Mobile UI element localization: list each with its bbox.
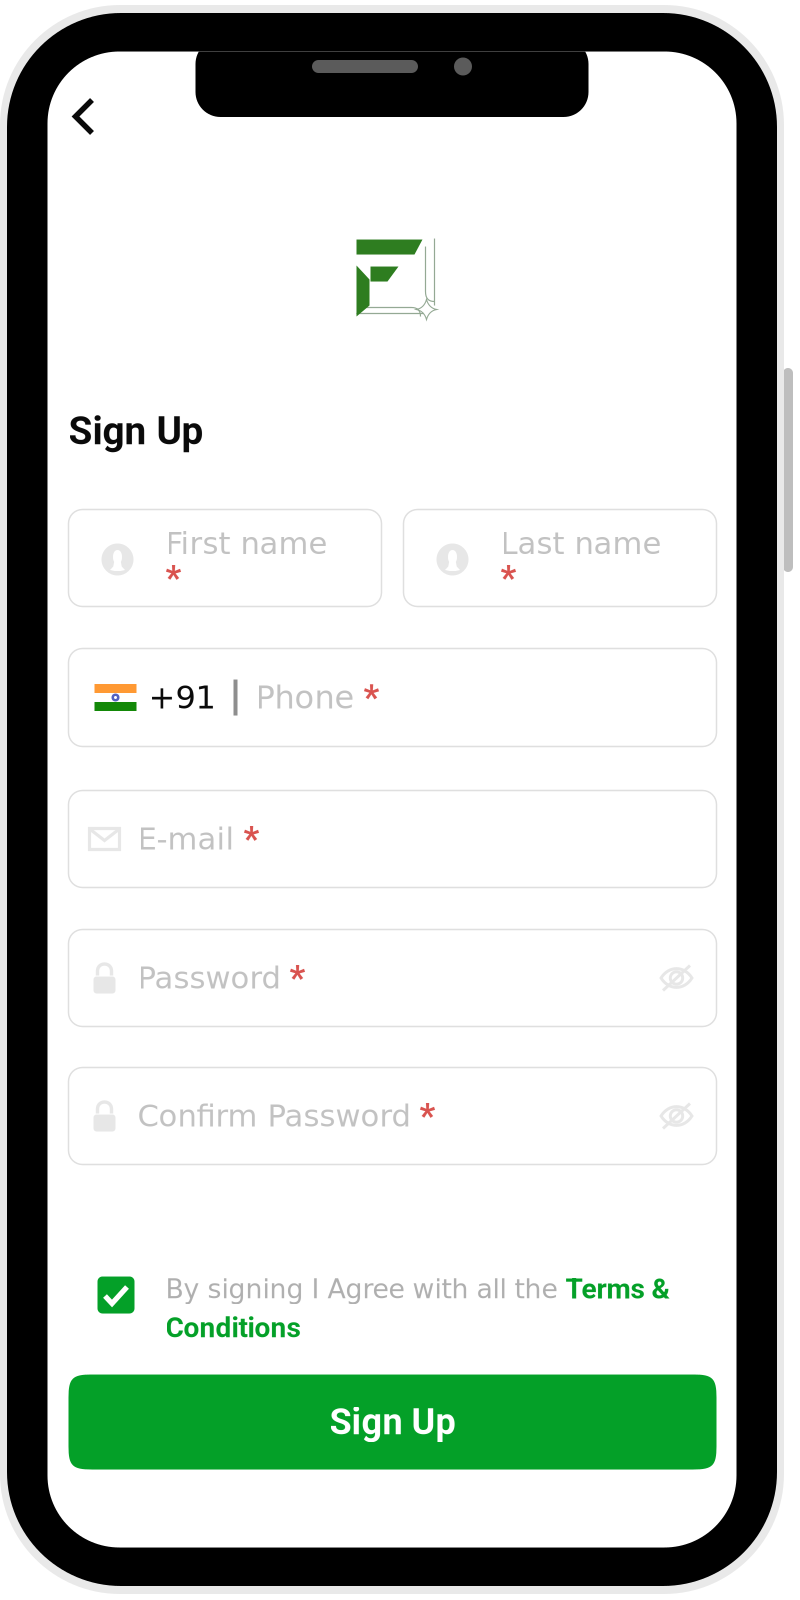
staticText: * xyxy=(410,1096,435,1136)
button[interactable]: First name xyxy=(68,509,381,606)
button[interactable]: Back xyxy=(56,81,110,151)
staticText: Terms & xyxy=(565,1272,669,1305)
staticText: * xyxy=(165,557,181,598)
staticText: Phone xyxy=(255,679,354,716)
staticText: Sign Up xyxy=(329,1401,455,1443)
staticText: Last name xyxy=(500,525,661,561)
button[interactable]: Last name xyxy=(403,509,716,606)
button[interactable]: E-mail xyxy=(68,790,716,887)
staticText: By signing I Agree with all the xyxy=(165,1273,565,1304)
staticText: Sign Up xyxy=(68,408,203,454)
staticText: First name xyxy=(165,525,327,561)
staticText: Conditions xyxy=(165,1311,300,1344)
staticText: E-mail xyxy=(137,821,234,857)
button[interactable]: Confirm Password xyxy=(68,1067,716,1164)
staticText: * xyxy=(234,819,259,859)
staticText: +91 xyxy=(148,679,215,716)
button[interactable]: Sign Up xyxy=(68,1374,716,1469)
staticText: Password xyxy=(137,960,280,996)
staticText: * xyxy=(500,557,516,598)
staticText: * xyxy=(280,958,305,998)
button[interactable]: +91 xyxy=(68,648,716,746)
button[interactable]: Password xyxy=(68,929,716,1026)
staticText: Confirm Password xyxy=(137,1098,410,1134)
staticText: * xyxy=(354,677,379,718)
button[interactable]: By signing I Agree with all the xyxy=(97,1272,717,1344)
